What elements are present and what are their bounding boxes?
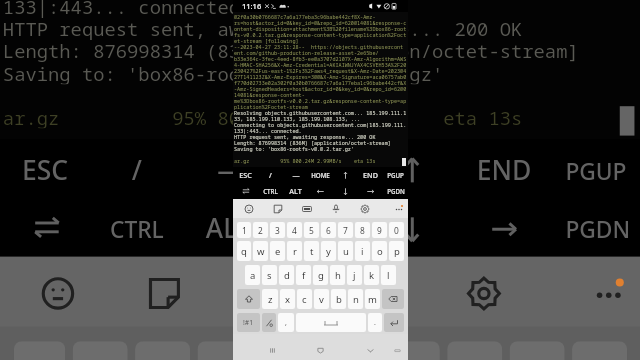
button[interactable]: Enter [384,313,404,332]
button[interactable]: PGDN [550,198,640,257]
button[interactable]: Stickers [273,199,302,218]
button[interactable]: More [389,199,408,218]
button[interactable]: Stickers [146,257,253,327]
button[interactable]: Shift [237,289,260,309]
button[interactable]: m [365,289,380,309]
button[interactable]: p [389,241,404,261]
button[interactable]: Home [309,339,331,360]
button[interactable]: Hide keyboard [359,339,381,360]
button[interactable]: ↑ [333,167,358,183]
button[interactable]: 5 [304,222,319,238]
button[interactable]: PGUP [383,167,408,183]
button[interactable]: t [304,241,319,261]
button[interactable]: ESC [0,139,91,198]
button[interactable]: 4 [287,222,302,238]
button[interactable]: 7 [338,222,353,238]
button[interactable]: 4 [197,341,253,360]
button[interactable]: !#1 [237,313,260,332]
button[interactable]: Emoji [244,199,273,218]
button[interactable]: l [381,265,396,285]
button[interactable]: Tab [0,198,91,257]
button[interactable]: Voice input [359,257,466,327]
button[interactable]: ← [275,198,366,257]
button[interactable]: — [283,167,308,183]
button[interactable]: Backspace [382,289,404,309]
button[interactable]: s [262,265,277,285]
button[interactable]: 1 [237,222,251,238]
button[interactable]: → [458,198,550,257]
button[interactable]: w [253,241,268,261]
button[interactable]: → [358,183,383,199]
button[interactable]: k [364,265,379,285]
button[interactable]: ALT [183,198,275,257]
button[interactable]: / [258,167,283,183]
button[interactable]: ALT [283,183,308,199]
button[interactable]: Space [296,313,366,332]
button[interactable]: 0 [389,222,404,238]
button[interactable]: END [358,167,383,183]
button[interactable]: CTRL [91,198,183,257]
button[interactable]: , [278,313,294,332]
button[interactable]: u [338,241,353,261]
staticText: k [369,269,375,282]
button[interactable]: 2 [253,222,268,238]
button[interactable]: Tab [233,183,258,199]
button[interactable]: END [458,139,550,198]
button[interactable]: Emoji [40,257,146,327]
button[interactable]: a [245,265,260,285]
button[interactable]: Settings [465,257,572,327]
button[interactable]: CTRL [258,183,283,199]
button[interactable]: Language [262,313,276,332]
button[interactable]: Settings [360,199,389,218]
button[interactable]: GIF [253,257,359,327]
button[interactable]: Voice input [331,199,360,218]
button[interactable]: h [330,265,345,285]
button[interactable]: ESC [233,167,258,183]
button[interactable]: HOME [275,139,366,198]
button[interactable]: z [262,289,278,309]
button[interactable]: GIF [302,199,331,218]
button[interactable]: PGUP [550,139,640,198]
button[interactable]: 8 [355,222,370,238]
button[interactable]: y [321,241,336,261]
button[interactable]: Recents [261,339,283,360]
button[interactable]: j [347,265,362,285]
button[interactable]: ↓ [333,183,358,199]
button[interactable]: 7 [385,341,440,360]
button[interactable]: — [183,139,275,198]
button[interactable]: c [297,289,312,309]
button[interactable]: 5 [260,341,315,360]
button[interactable]: HOME [308,167,333,183]
button[interactable]: b [331,289,346,309]
button[interactable]: i [355,241,370,261]
button[interactable]: n [348,289,363,309]
button[interactable]: / [91,139,183,198]
button[interactable]: 6 [321,222,336,238]
button[interactable]: . [368,313,382,332]
button[interactable]: f [296,265,311,285]
button[interactable]: 9 [372,222,387,238]
button[interactable]: ↑ [366,139,458,198]
button[interactable]: g [313,265,328,285]
button[interactable]: More [572,257,640,327]
button[interactable]: e [270,241,285,261]
button[interactable]: x [280,289,295,309]
button[interactable]: o [372,241,387,261]
button[interactable]: ← [308,183,333,199]
button[interactable]: r [287,241,302,261]
button[interactable]: q [237,241,251,261]
button[interactable]: Switch keyboard [386,339,408,360]
button[interactable]: v [314,289,329,309]
button[interactable]: PGDN [383,183,408,199]
button[interactable]: ↓ [366,198,458,257]
button[interactable]: 3 [270,222,285,238]
button[interactable]: d [279,265,294,285]
button[interactable]: 6 [322,341,377,360]
